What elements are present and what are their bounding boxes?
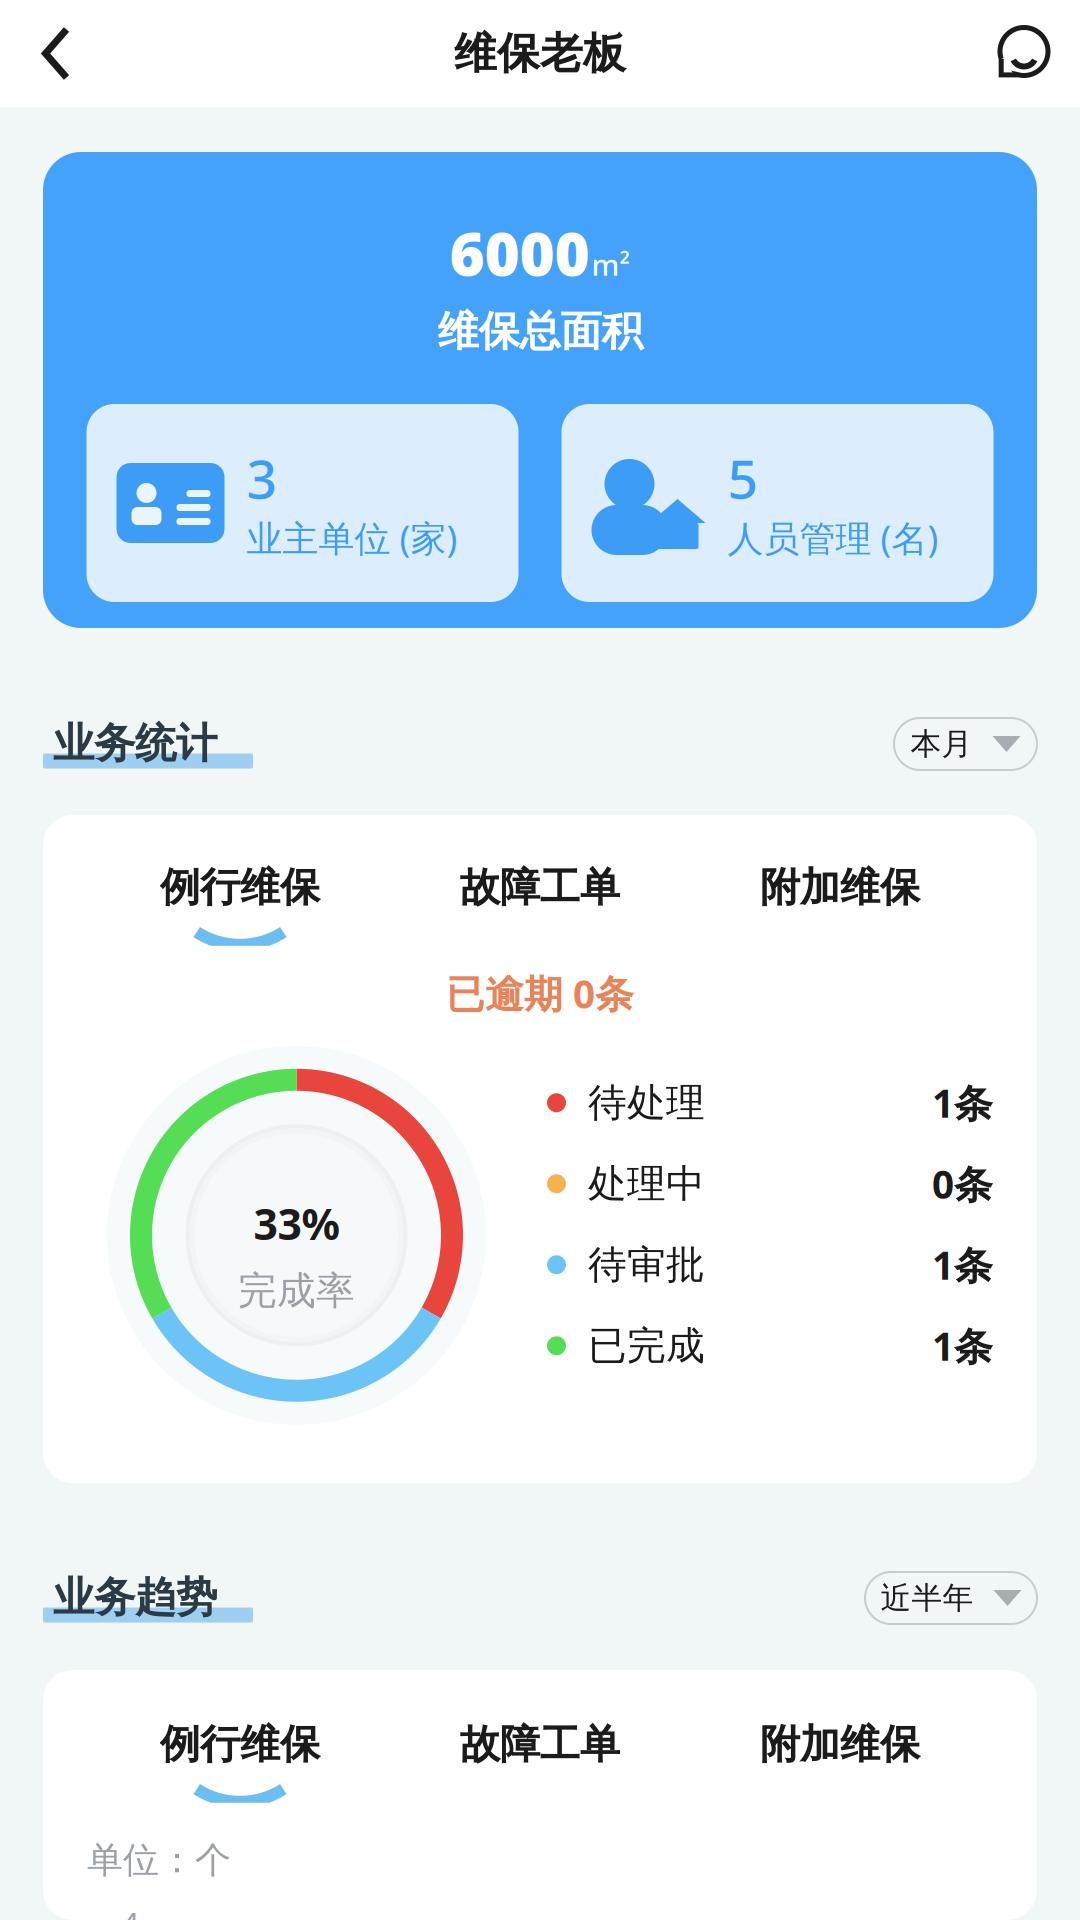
button[interactable]: Back — [0, 0, 112, 107]
staticText: 附加维保 — [760, 866, 920, 909]
staticText: 业务趋势 — [53, 1575, 217, 1619]
staticText: 1条 — [932, 1323, 993, 1368]
staticText: 维保总面积 — [437, 309, 642, 354]
staticText: 例行维保 — [160, 1723, 320, 1766]
button[interactable]: Chat — [968, 0, 1080, 107]
staticText: 3 — [246, 447, 277, 509]
button[interactable]: 例行维保 — [90, 1714, 390, 1807]
button[interactable]: 故障工单 — [390, 857, 690, 950]
staticText: 业主单位 (家) — [246, 517, 457, 559]
staticText: 业务统计 — [53, 721, 217, 765]
staticText: 1条 — [932, 1080, 993, 1125]
staticText: 已完成 — [588, 1325, 705, 1366]
button[interactable]: 3 — [86, 404, 518, 602]
staticText: 1条 — [932, 1242, 993, 1287]
button[interactable]: 本月 — [894, 718, 1037, 770]
staticText: 附加维保 — [760, 1723, 920, 1766]
staticText: 近半年 — [880, 1582, 973, 1614]
staticText: 故障工单 — [460, 866, 620, 909]
staticText: 33% — [253, 1199, 339, 1248]
staticText: 本月 — [910, 728, 972, 760]
button[interactable]: 例行维保 — [90, 857, 390, 950]
staticText: 例行维保 — [160, 866, 320, 909]
staticText: 人员管理 (名) — [727, 517, 938, 559]
staticText: m² — [591, 247, 630, 281]
staticText: 待处理 — [588, 1082, 705, 1123]
staticText: 维保老板 — [454, 31, 626, 76]
staticText: 5 — [727, 447, 758, 509]
staticText: 4 — [121, 1905, 139, 1920]
staticText: 处理中 — [588, 1163, 705, 1204]
button[interactable]: 5 — [561, 404, 993, 602]
button[interactable]: 近半年 — [865, 1572, 1037, 1624]
staticText: 完成率 — [238, 1270, 355, 1312]
button[interactable]: 附加维保 — [690, 857, 990, 950]
staticText: 6000 — [449, 218, 589, 287]
staticText: 故障工单 — [460, 1723, 620, 1766]
button[interactable]: 附加维保 — [690, 1714, 990, 1807]
staticText: 已逾期 0条 — [446, 971, 634, 1016]
staticText: 待审批 — [588, 1244, 705, 1285]
staticText: 0条 — [932, 1161, 993, 1206]
button[interactable]: 故障工单 — [390, 1714, 690, 1807]
staticText: 单位：个 — [87, 1841, 231, 1879]
